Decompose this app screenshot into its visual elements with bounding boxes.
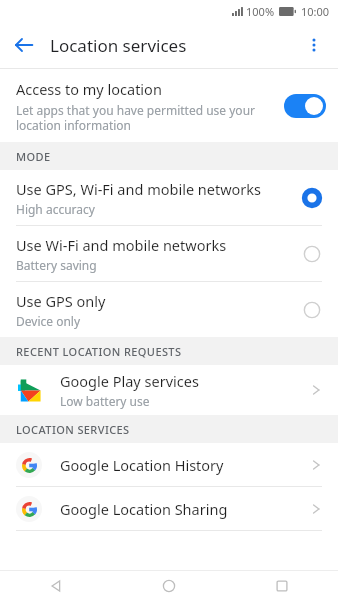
button[interactable]: Use GPS only (0, 282, 338, 337)
staticText: High accuracy (16, 201, 95, 217)
button[interactable]: Google Play services (0, 365, 338, 415)
staticText: Let apps that you have permitted use you… (16, 102, 276, 133)
staticText: Use Wi-Fi and mobile networks (16, 235, 227, 255)
button[interactable]: Access to my location (0, 69, 338, 142)
staticText: Google Location History (60, 455, 224, 475)
staticText: Device only (16, 313, 81, 329)
staticText: Access to my location (16, 79, 162, 99)
staticText: Location services (50, 34, 187, 57)
staticText: Low battery use (60, 393, 150, 409)
button[interactable]: Back (6, 27, 42, 63)
staticText: RECENT LOCATION REQUESTS (16, 344, 182, 359)
button[interactable]: Recents (225, 571, 338, 600)
button[interactable]: Google Location Sharing (0, 487, 338, 530)
button[interactable]: Access to my location toggle (284, 94, 326, 118)
staticText: Google Play services (60, 371, 199, 391)
staticText: Google Location Sharing (60, 499, 228, 519)
staticText: MODE (16, 149, 51, 164)
button[interactable]: Back (0, 571, 112, 600)
button[interactable]: Use Wi-Fi and mobile networks (0, 226, 338, 281)
staticText: LOCATION SERVICES (16, 422, 130, 437)
button[interactable]: Google Location History (0, 443, 338, 486)
staticText: 10:00 (301, 4, 330, 19)
button[interactable]: Use GPS, Wi-Fi and mobile networks (0, 170, 338, 225)
staticText: 100% (246, 4, 275, 19)
staticText: Use GPS only (16, 291, 106, 311)
staticText: Use GPS, Wi-Fi and mobile networks (16, 179, 262, 199)
button[interactable]: Home (112, 571, 225, 600)
button[interactable]: More options (296, 27, 332, 63)
staticText: Battery saving (16, 257, 97, 273)
